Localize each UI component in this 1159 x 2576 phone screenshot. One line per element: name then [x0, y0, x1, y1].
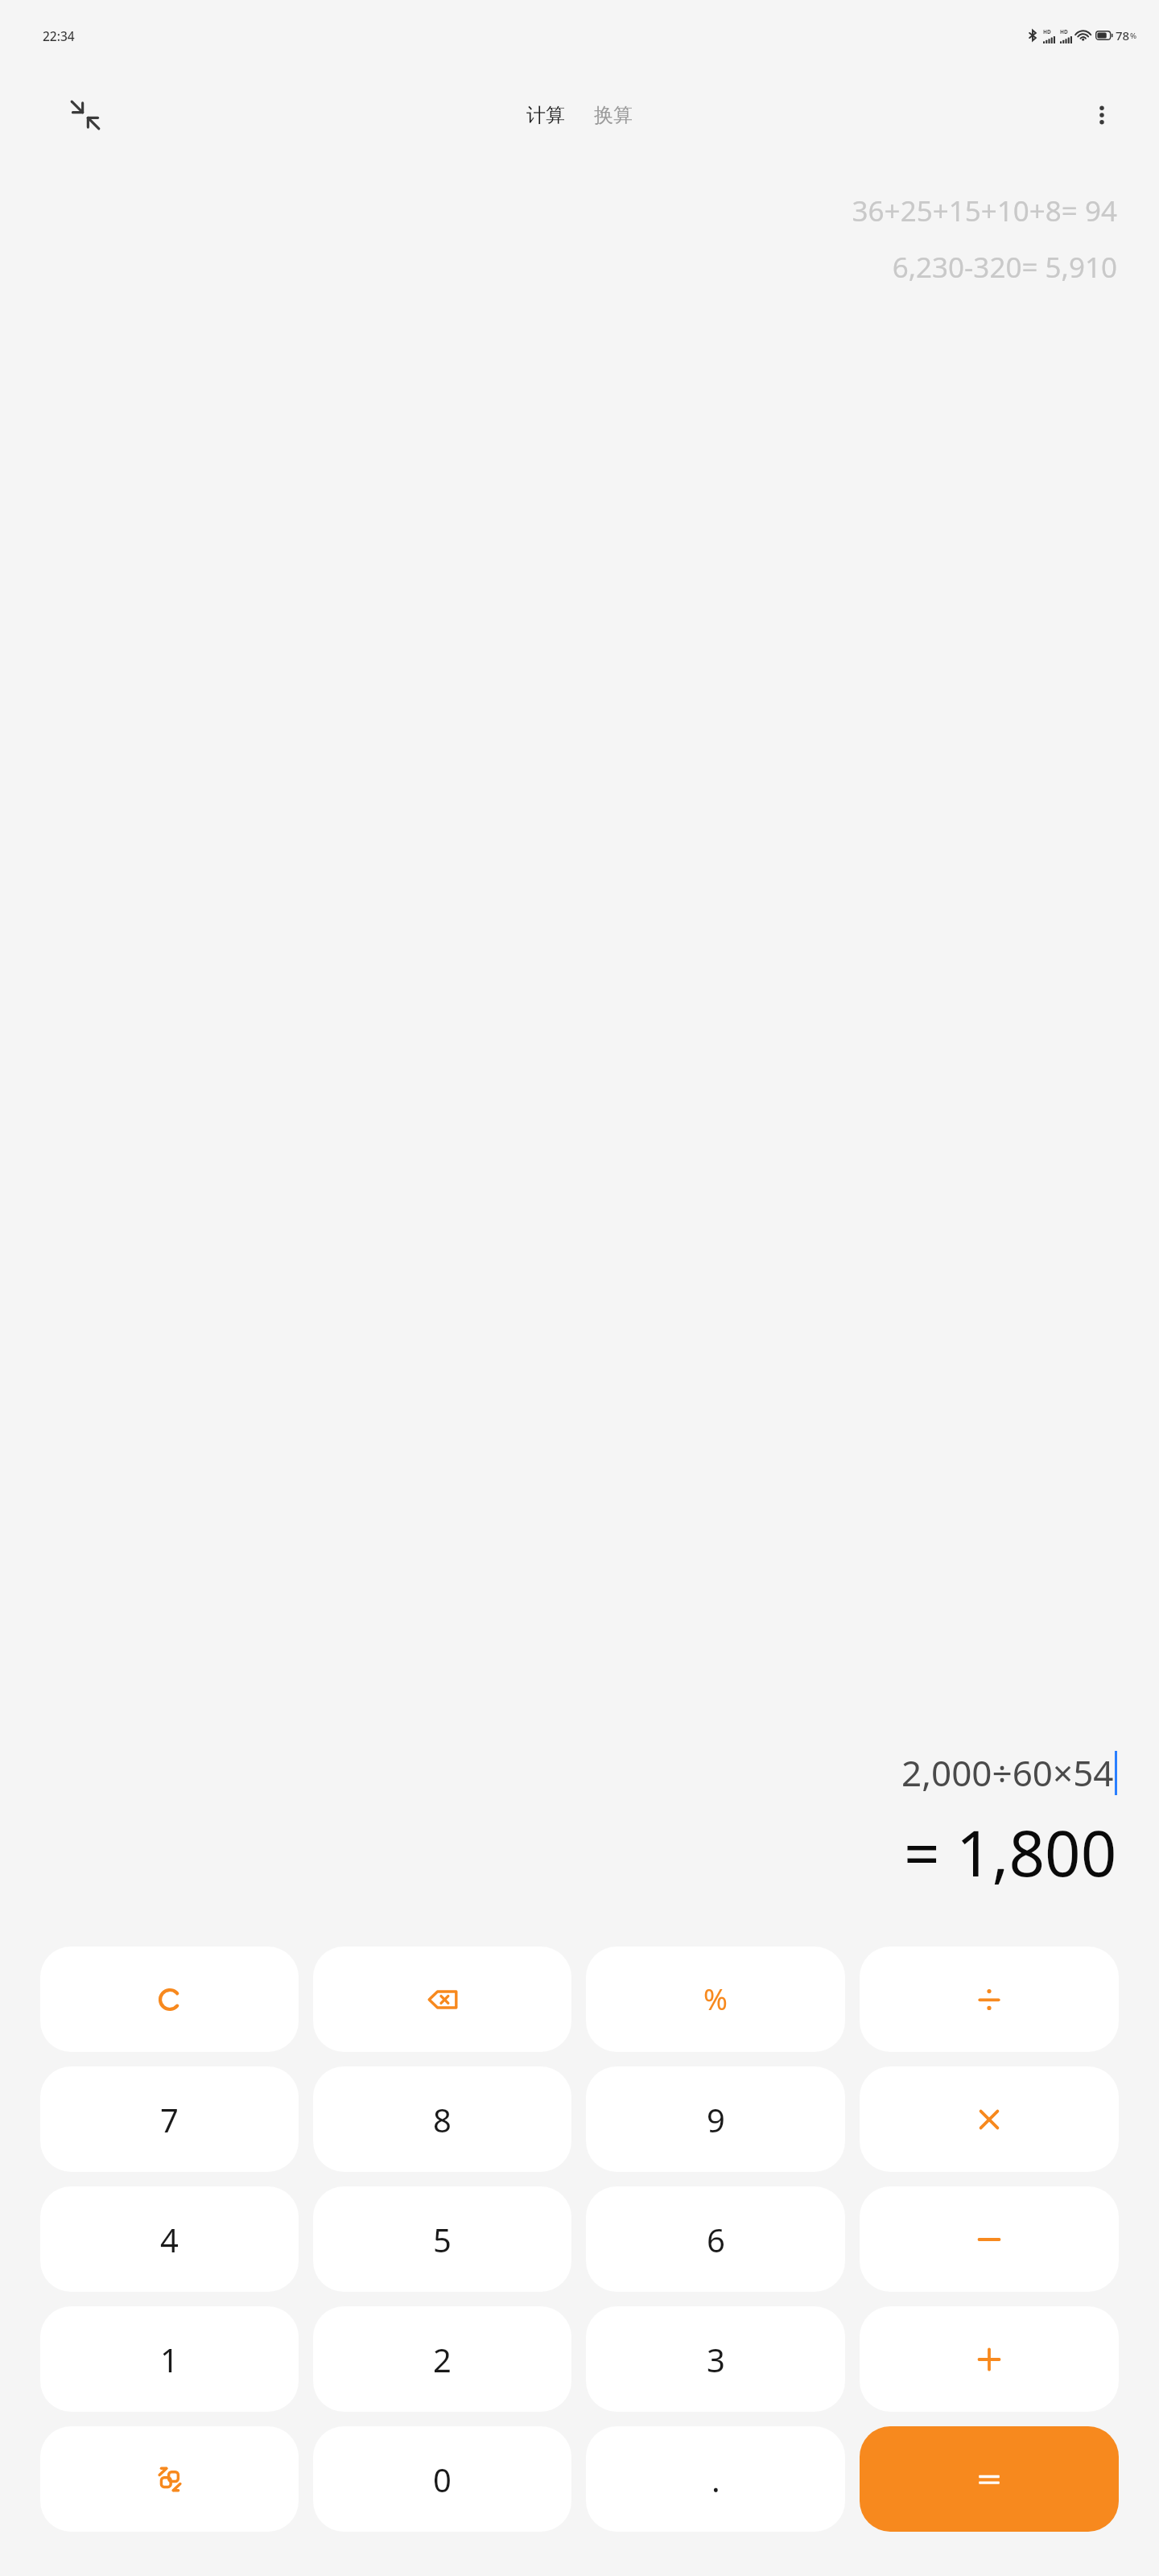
staticText: 5 [433, 2218, 452, 2261]
staticText: % [703, 1979, 728, 2019]
staticText: 0 [433, 2458, 452, 2501]
staticText: 2,000÷60×54 [901, 1748, 1114, 1797]
staticText: 22:34 [43, 27, 75, 44]
staticText: 换算 [594, 103, 633, 127]
button[interactable]: 36+25+15+10+8= 94 [852, 192, 1117, 230]
staticText: = 1,800 [904, 1810, 1117, 1895]
staticText: 9 [707, 2098, 725, 2141]
button[interactable]: 6,230-320= 5,910 [892, 248, 1117, 287]
staticText: 78 [1116, 27, 1130, 43]
staticText: HD [1043, 28, 1051, 35]
staticText: 8 [433, 2098, 452, 2141]
button[interactable]: Add [860, 2306, 1119, 2412]
button[interactable]: 换算 [589, 98, 637, 132]
button[interactable]: Unit conversion [40, 2426, 299, 2532]
button[interactable]: Subtract [860, 2186, 1119, 2292]
button[interactable]: 9 [586, 2066, 845, 2172]
staticText: 1 [160, 2338, 179, 2381]
button[interactable]: Clear [40, 1946, 299, 2052]
staticText: 6 [707, 2218, 725, 2261]
button[interactable]: Backspace [313, 1946, 571, 2052]
button[interactable]: More options [1081, 94, 1123, 136]
staticText: 计算 [526, 103, 565, 127]
button[interactable]: 6 [586, 2186, 845, 2292]
staticText: HD [1060, 28, 1068, 35]
button[interactable]: 0 [313, 2426, 571, 2532]
staticText: 6,230-320= 5,910 [892, 248, 1117, 287]
button[interactable]: % [586, 1946, 845, 2052]
button[interactable]: 7 [40, 2066, 299, 2172]
staticText: % [1130, 31, 1137, 41]
button[interactable]: 8 [313, 2066, 571, 2172]
staticText: 36+25+15+10+8= 94 [852, 192, 1117, 230]
button[interactable]: Collapse [64, 94, 106, 136]
staticText: 2 [433, 2338, 452, 2381]
button[interactable]: 3 [586, 2306, 845, 2412]
button[interactable]: Divide [860, 1946, 1119, 2052]
staticText: 4 [160, 2218, 179, 2261]
button[interactable]: Equals [860, 2426, 1119, 2532]
staticText: 7 [160, 2098, 179, 2141]
button[interactable]: 5 [313, 2186, 571, 2292]
button[interactable]: 1 [40, 2306, 299, 2412]
button[interactable]: 4 [40, 2186, 299, 2292]
button[interactable]: 2 [313, 2306, 571, 2412]
button[interactable]: . [586, 2426, 845, 2532]
staticText: 3 [707, 2338, 725, 2381]
button[interactable]: 计算 [522, 98, 570, 132]
button[interactable]: Multiply [860, 2066, 1119, 2172]
staticText: . [711, 2458, 720, 2501]
